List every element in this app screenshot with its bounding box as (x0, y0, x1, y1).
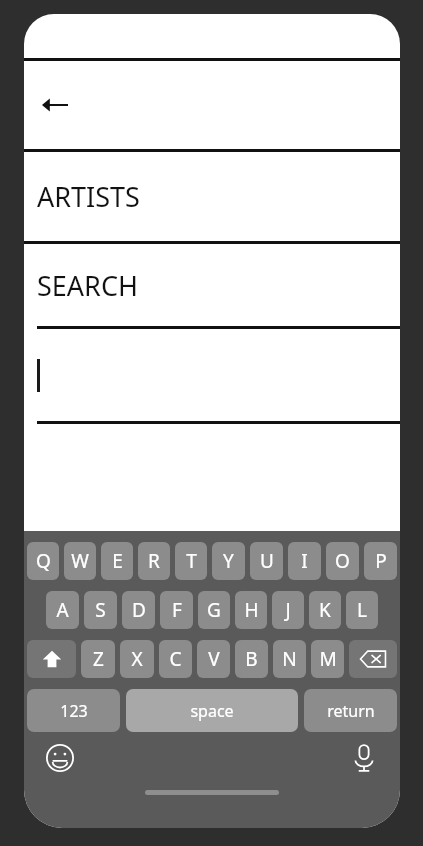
staticText: ARTISTS (37, 178, 140, 215)
button[interactable]: O (326, 542, 359, 580)
staticText: SEARCH (37, 267, 138, 304)
staticText: S (95, 597, 106, 623)
button[interactable]: N (273, 640, 306, 678)
staticText: 123 (60, 700, 88, 722)
button[interactable]: L (346, 591, 378, 629)
button[interactable]: Delete (349, 640, 397, 678)
button[interactable]: Back (31, 81, 79, 129)
button[interactable]: Q (27, 542, 59, 580)
button[interactable]: J (272, 591, 304, 629)
staticText: C (169, 646, 182, 672)
staticText: B (245, 646, 258, 672)
button[interactable]: S (84, 591, 117, 629)
button[interactable]: Voice input (344, 738, 384, 778)
button[interactable]: M (311, 640, 344, 678)
staticText: E (112, 548, 123, 574)
staticText: F (172, 597, 182, 623)
staticText: T (186, 548, 197, 574)
staticText: G (207, 597, 221, 623)
staticText: space (190, 700, 234, 722)
button[interactable]: B (235, 640, 268, 678)
staticText: I (301, 548, 308, 574)
button[interactable]: F (160, 591, 193, 629)
button[interactable]: W (64, 542, 96, 580)
staticText: V (208, 646, 220, 672)
button[interactable]: I (288, 542, 321, 580)
staticText: Z (93, 646, 104, 672)
button[interactable] (24, 326, 400, 424)
staticText: A (56, 597, 69, 623)
staticText: M (319, 646, 337, 672)
button[interactable]: ARTISTS (24, 152, 400, 241)
button[interactable]: H (235, 591, 267, 629)
button[interactable]: K (309, 591, 341, 629)
staticText: H (244, 597, 259, 623)
staticText: U (260, 548, 274, 574)
button[interactable]: space (126, 689, 298, 732)
staticText: L (357, 597, 367, 623)
staticText: J (285, 597, 291, 623)
button[interactable]: D (122, 591, 155, 629)
button[interactable]: E (101, 542, 133, 580)
button[interactable]: X (120, 640, 154, 678)
staticText: N (282, 646, 297, 672)
button[interactable]: 123 (27, 689, 120, 732)
staticText: return (327, 700, 375, 722)
button[interactable]: G (198, 591, 230, 629)
button[interactable]: Emoji (40, 738, 80, 778)
button[interactable]: C (159, 640, 192, 678)
staticText: W (71, 548, 89, 574)
button[interactable]: V (197, 640, 230, 678)
button[interactable]: Z (81, 640, 115, 678)
staticText: Y (223, 548, 234, 574)
staticText: K (319, 597, 331, 623)
staticText: D (132, 597, 146, 623)
staticText: O (335, 548, 350, 574)
staticText: Q (36, 548, 51, 574)
button[interactable]: P (364, 542, 397, 580)
staticText: P (375, 548, 387, 574)
button[interactable]: Shift (27, 640, 76, 678)
button[interactable]: T (175, 542, 207, 580)
button[interactable]: Y (212, 542, 245, 580)
staticText: R (148, 548, 160, 574)
button[interactable]: A (46, 591, 79, 629)
button[interactable]: U (250, 542, 283, 580)
staticText: X (131, 646, 143, 672)
button[interactable]: R (138, 542, 170, 580)
button[interactable]: return (304, 689, 397, 732)
